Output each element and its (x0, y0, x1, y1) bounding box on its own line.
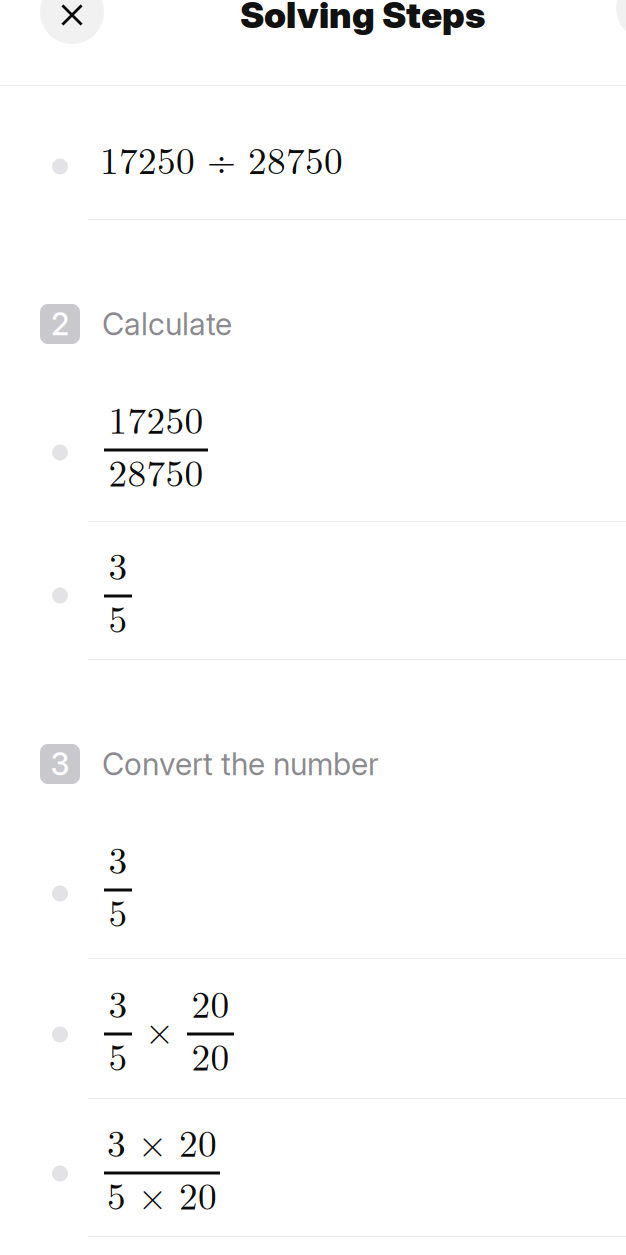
button[interactable]: 3 (0, 522, 626, 659)
staticText: 17250 ÷ 28750 (100, 132, 343, 185)
button[interactable]: 3 (0, 821, 626, 958)
button[interactable]: 3 (0, 959, 626, 1098)
staticText: 3 (50, 745, 69, 782)
staticText: × (145, 1002, 174, 1055)
button[interactable]: 17250 (0, 386, 626, 521)
staticText: 3 (108, 538, 127, 590)
staticText: Calculate (102, 305, 232, 342)
staticText: Convert the number (102, 745, 379, 782)
staticText: 2 (51, 305, 69, 342)
staticText: 5 (108, 884, 127, 937)
button[interactable]: Close (40, 0, 104, 44)
button[interactable]: 3 × 20 (0, 1099, 626, 1236)
staticText: 3 (108, 832, 127, 884)
staticText: 3 × 20 (107, 1115, 217, 1167)
button[interactable]: 17250 ÷ 28750 (0, 86, 626, 219)
staticText: Solving Steps (240, 0, 485, 37)
button[interactable]: More options (616, 0, 626, 40)
staticText: 20 (191, 976, 229, 1028)
staticText: 5 (108, 1028, 127, 1081)
staticText: 5 (108, 590, 127, 643)
staticText: 20 (191, 1028, 229, 1081)
staticText: 28750 (108, 444, 203, 497)
staticText: 5 × 20 (107, 1167, 217, 1220)
staticText: 3 (108, 976, 127, 1028)
staticText: 17250 (108, 392, 203, 444)
